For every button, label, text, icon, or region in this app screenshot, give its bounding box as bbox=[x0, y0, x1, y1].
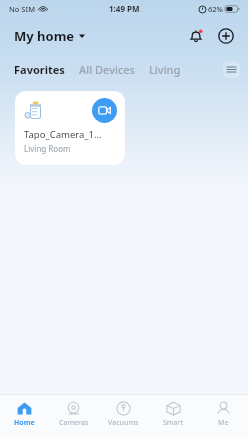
staticText: 62% bbox=[208, 4, 223, 14]
button[interactable]: All Devices bbox=[77, 59, 137, 80]
button[interactable]: Cameras bbox=[49, 395, 98, 439]
staticText: Home bbox=[14, 418, 35, 428]
button[interactable]: Me bbox=[198, 395, 248, 439]
staticText: No SIM bbox=[9, 4, 36, 14]
staticText: My home bbox=[14, 27, 75, 45]
staticText: Cameras bbox=[59, 418, 89, 428]
staticText: Tapo_Camera_1... bbox=[24, 128, 102, 141]
staticText: Me bbox=[218, 418, 229, 428]
button[interactable]: Living Ro bbox=[147, 59, 185, 80]
button[interactable]: My home bbox=[10, 24, 89, 48]
staticText: Vacuums bbox=[108, 418, 139, 428]
staticText: Living Room bbox=[24, 143, 71, 154]
button[interactable]: Vacuums bbox=[98, 395, 148, 439]
staticText: Smart bbox=[163, 418, 184, 428]
staticText: Living Ro bbox=[149, 62, 183, 77]
button[interactable]: Favorites bbox=[12, 59, 67, 80]
button[interactable]: Home bbox=[0, 395, 49, 439]
staticText: 1:49 PM bbox=[109, 3, 140, 14]
button[interactable]: Camera on bbox=[15, 91, 125, 165]
staticText: All Devices bbox=[79, 62, 135, 77]
button[interactable]: Camera on bbox=[92, 98, 117, 123]
button[interactable]: Room list menu bbox=[223, 61, 240, 78]
staticText: Favorites bbox=[14, 62, 65, 77]
button[interactable]: Smart bbox=[148, 395, 198, 439]
button[interactable]: Add device bbox=[213, 23, 239, 49]
button[interactable]: Notifications bbox=[183, 23, 209, 49]
